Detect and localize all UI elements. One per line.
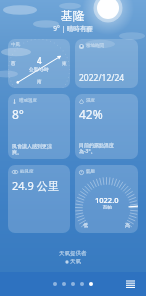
button[interactable]: Page 3	[71, 282, 75, 286]
staticText: 西	[11, 61, 16, 67]
staticText: 1022.0	[95, 195, 119, 205]
staticText: 低	[83, 222, 88, 228]
staticText: 氣壓	[86, 169, 95, 175]
button[interactable]: 體感溫度	[8, 94, 70, 159]
staticText: 百帕	[103, 205, 112, 211]
button[interactable]: Page 1	[53, 282, 57, 286]
button[interactable]: Page 2	[62, 282, 66, 286]
staticText: 9° | 晴時有霾	[53, 24, 93, 33]
button[interactable]: 中風	[8, 39, 70, 88]
button[interactable]: Page 5	[89, 282, 93, 286]
staticText: 8°	[12, 106, 25, 122]
button[interactable]: 氣壓	[75, 165, 138, 233]
staticText: 風會讓人感到更涼 爽。	[12, 143, 52, 155]
staticText: 4	[37, 55, 42, 66]
button[interactable]: Menu	[124, 278, 136, 290]
staticText: 公里/小時	[29, 66, 49, 72]
button[interactable]: 能見度	[8, 165, 70, 233]
staticText: 天氣提供者	[59, 250, 87, 257]
staticText: 2022/12/24	[79, 72, 125, 84]
staticText: 基隆	[61, 8, 85, 23]
button[interactable]: 當地時間	[75, 39, 138, 88]
staticText: 能見度	[20, 169, 34, 175]
staticText: 體感溫度	[19, 98, 37, 104]
staticText: 24.9 公里	[12, 178, 59, 193]
staticText: 天氣	[70, 258, 81, 265]
button[interactable]: Page 4	[80, 282, 84, 286]
staticText: 目前的露點溫度 為-3°。	[79, 142, 114, 155]
staticText: 濕度	[86, 98, 95, 104]
staticText: 東	[62, 61, 67, 67]
staticText: 42%	[79, 106, 103, 122]
staticText: 南	[37, 79, 42, 85]
staticText: 中風	[11, 42, 20, 48]
staticText: 當地時間	[86, 43, 104, 49]
staticText: 高	[125, 222, 130, 228]
button[interactable]: 濕度	[75, 94, 138, 159]
